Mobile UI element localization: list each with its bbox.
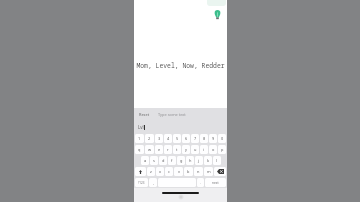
staticText: l [216,158,218,163]
button[interactable]: ?123 [135,178,148,187]
staticText: v [178,169,180,174]
staticText: h [189,158,192,163]
button[interactable]: r [164,145,172,154]
staticText: e [158,147,161,152]
staticText: 3 [158,136,161,141]
staticText: r [167,147,169,152]
staticText: t [176,147,178,152]
button[interactable]: e [155,145,163,154]
button[interactable]: . [197,178,204,187]
button[interactable]: 7 [191,134,199,143]
button[interactable]: , [149,178,157,187]
button[interactable]: g [177,156,185,165]
button[interactable]: 0 [218,134,226,143]
button[interactable]: Hint [212,9,223,20]
button[interactable]: k [204,156,212,165]
button[interactable]: 5 [173,134,181,143]
staticText: j [198,158,200,163]
button[interactable]: l [213,156,221,165]
staticText: m [207,169,211,174]
button[interactable]: 6 [182,134,190,143]
staticText: Reset [139,112,150,117]
button[interactable]: f [168,156,176,165]
button[interactable]: t [173,145,181,154]
staticText: d [162,158,165,163]
staticText: . [200,180,201,185]
staticText: 0 [221,136,224,141]
staticText: f [171,158,173,163]
staticText: ?123 [138,181,145,185]
button[interactable]: 1 [135,134,144,143]
button[interactable]: Backspace [214,167,226,176]
staticText: 9 [212,136,215,141]
button[interactable]: b [184,167,193,176]
button[interactable]: s [150,156,158,165]
staticText: 7 [194,136,197,141]
button[interactable]: n [194,167,203,176]
button[interactable]: p [218,145,226,154]
button[interactable]: h [186,156,194,165]
staticText: 1 [138,136,141,141]
staticText: z [150,169,152,174]
button[interactable]: Home [162,192,199,194]
button[interactable]: i [200,145,208,154]
staticText: next [212,181,219,185]
staticText: , [153,180,154,185]
staticText: 8 [203,136,206,141]
staticText: a [144,158,147,163]
button[interactable]: w [145,145,154,154]
staticText: x [159,169,162,174]
staticText: b [187,169,190,174]
staticText: k [207,158,210,163]
button[interactable]: y [182,145,190,154]
button[interactable]: 2 [145,134,154,143]
button[interactable]: 8 [200,134,208,143]
staticText: s [153,158,155,163]
button[interactable]: c [165,167,173,176]
button[interactable]: m [204,167,213,176]
staticText: 6 [185,136,188,141]
staticText: 4 [167,136,170,141]
staticText: Lvl [138,124,144,130]
staticText: q [138,147,141,152]
staticText: c [168,169,170,174]
button[interactable]: 3 [155,134,163,143]
button[interactable]: 4 [164,134,172,143]
button[interactable]: Shift [135,167,146,176]
staticText: i [203,147,205,152]
button[interactable]: a [141,156,149,165]
button[interactable]: q [135,145,144,154]
staticText: p [221,147,224,152]
button[interactable]: o [209,145,217,154]
button[interactable]: j [195,156,203,165]
button[interactable]: z [147,167,155,176]
staticText: n [197,169,200,174]
staticText: Type some text [158,112,186,117]
button[interactable]: u [191,145,199,154]
button[interactable]: 9 [209,134,217,143]
button[interactable]: next [205,178,226,187]
staticText: g [180,158,183,163]
staticText: o [212,147,215,152]
button[interactable]: v [174,167,183,176]
button[interactable]: d [159,156,167,165]
staticText: 5 [176,136,179,141]
staticText: 2 [148,136,151,141]
staticText: Mom, Level, Now, Redder [136,61,225,70]
button[interactable]: x [156,167,164,176]
staticText: u [194,147,197,152]
button[interactable]: Reset [138,111,151,118]
staticText: w [148,147,152,152]
staticText: y [185,147,187,152]
